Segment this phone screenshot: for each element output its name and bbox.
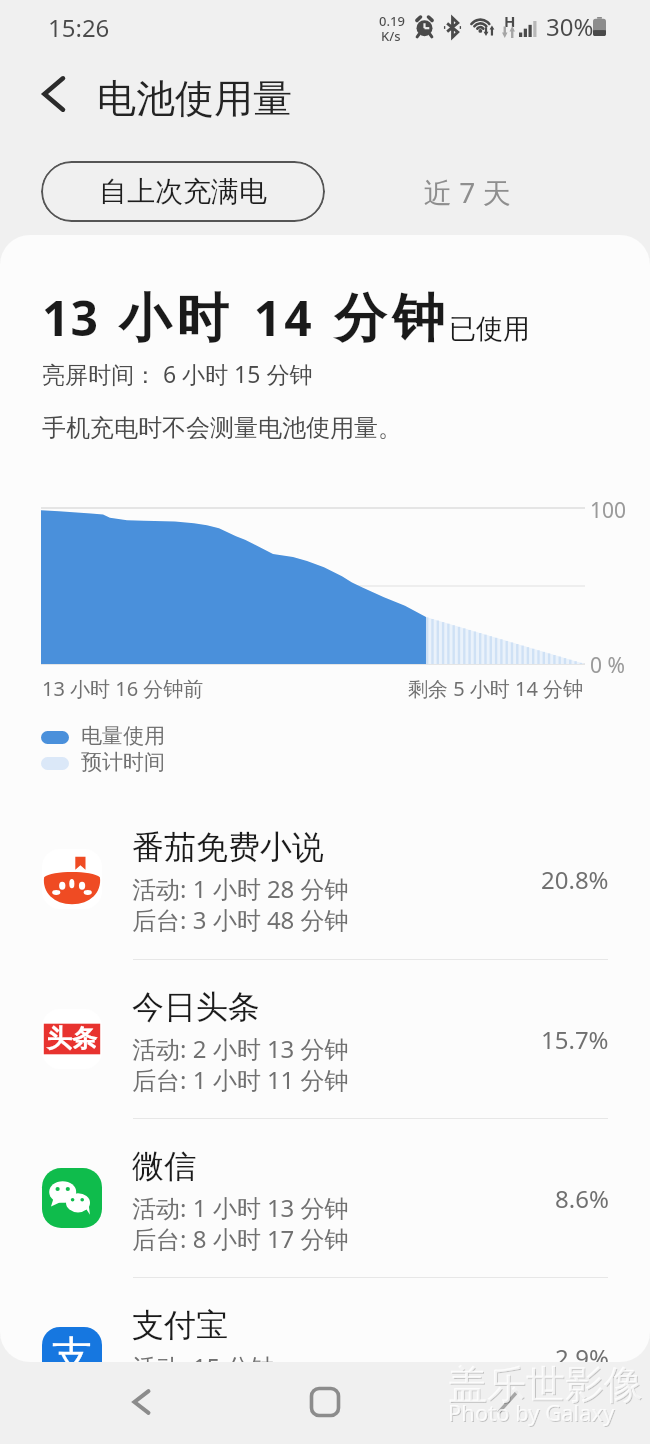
staticText: 0.19 — [379, 12, 405, 30]
staticText: Photo by Galaxy — [448, 1397, 615, 1427]
staticText: 头条 — [47, 1023, 97, 1054]
staticText: 盖乐世影像 — [448, 1360, 643, 1409]
button[interactable]: 支 — [0, 1293, 650, 1362]
staticText: 剩余 5 小时 14 分钟 — [408, 675, 584, 702]
staticText: 支 — [51, 1331, 93, 1362]
staticText: 后台: 1 小时 11 分钟 — [132, 1063, 349, 1096]
button[interactable]: 番茄免费小说 — [0, 815, 650, 958]
staticText: 活动: 1 小时 13 分钟 — [132, 1191, 349, 1224]
button[interactable]: 自上次充满电 — [41, 161, 325, 222]
button[interactable]: Home — [298, 1375, 352, 1429]
staticText: 已使用 — [449, 312, 530, 346]
staticText: 后台: 8 小时 17 分钟 — [132, 1222, 349, 1255]
staticText: 支付宝 — [132, 1305, 228, 1345]
staticText: Photo by Galaxy — [449, 1398, 616, 1428]
staticText: H — [504, 11, 516, 31]
staticText: 微信 — [132, 1146, 196, 1186]
button[interactable]: 微信 — [0, 1134, 650, 1277]
button[interactable]: Back — [26, 66, 82, 122]
button[interactable]: 近 7 天 — [370, 161, 565, 222]
staticText: 13 小时 16 分钟前 — [42, 675, 204, 702]
staticText: 电量使用 — [81, 723, 165, 749]
staticText: 15.7% — [541, 1023, 609, 1056]
button[interactable]: 头条 — [0, 975, 650, 1118]
staticText: 20.8% — [541, 863, 609, 896]
button[interactable]: Back — [115, 1375, 169, 1429]
staticText: 后台: 3 小时 48 分钟 — [132, 903, 349, 936]
staticText: 手机充电时不会测量电池使用量。 — [42, 413, 402, 443]
staticText: 电池使用量 — [97, 74, 292, 123]
staticText: 活动: 15 分钟 — [132, 1350, 275, 1362]
staticText: 自上次充满电 — [99, 174, 267, 209]
staticText: K/s — [381, 27, 401, 45]
staticText: 13 小时 14 分钟 — [42, 285, 445, 352]
staticText: 近 7 天 — [424, 173, 511, 211]
button[interactable]: Recents — [481, 1375, 535, 1429]
staticText: 活动: 1 小时 28 分钟 — [132, 872, 349, 905]
staticText: 30% — [546, 10, 594, 43]
staticText: 活动: 2 小时 13 分钟 — [132, 1032, 349, 1065]
staticText: 2.9% — [555, 1341, 609, 1362]
staticText: 100 — [590, 496, 627, 525]
staticText: 预计时间 — [81, 749, 165, 775]
staticText: 盖乐世影像 — [449, 1361, 644, 1410]
staticText: 0 % — [590, 651, 625, 680]
staticText: 番茄免费小说 — [132, 827, 324, 867]
staticText: 今日头条 — [132, 987, 260, 1027]
staticText: 亮屏时间： 6 小时 15 分钟 — [42, 358, 313, 389]
staticText: 8.6% — [555, 1182, 609, 1215]
staticText: 15:26 — [48, 11, 110, 44]
